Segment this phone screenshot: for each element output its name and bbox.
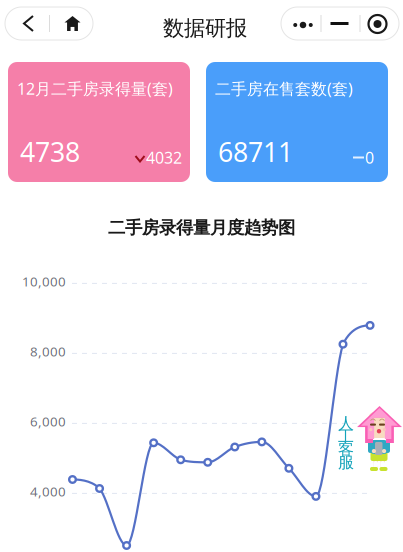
- staticText: 二手房录得量月度趋势图: [108, 217, 295, 238]
- staticText: 6,000: [30, 412, 66, 430]
- staticText: 10,000: [22, 272, 66, 290]
- staticText: 客: [338, 440, 354, 459]
- staticText: 二手房在售套数(套): [215, 78, 353, 99]
- staticText: 4738: [20, 134, 80, 169]
- staticText: 工: [338, 427, 354, 446]
- staticText: 4032: [146, 147, 182, 168]
- staticText: 8,000: [30, 342, 66, 360]
- staticText: 12月二手房录得量(套): [17, 78, 173, 99]
- staticText: 数据研报: [163, 15, 247, 41]
- button[interactable]: Back and home: [5, 7, 93, 40]
- staticText: 0: [365, 147, 374, 168]
- button[interactable]: More options: [281, 7, 399, 40]
- staticText: 68711: [218, 134, 293, 169]
- staticText: 服: [338, 453, 354, 472]
- button[interactable]: Customer service: [338, 406, 402, 474]
- staticText: 人: [338, 414, 354, 433]
- staticText: 4,000: [30, 482, 66, 500]
